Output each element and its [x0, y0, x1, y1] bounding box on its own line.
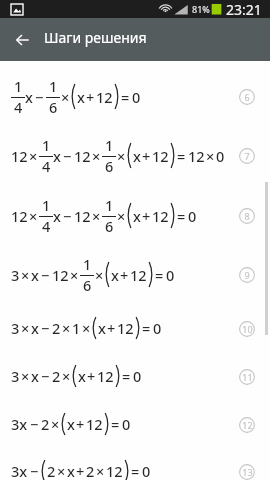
staticText: 1: [105, 195, 114, 215]
button[interactable]: 3x: [0, 408, 270, 442]
staticText: +: [76, 461, 85, 480]
staticText: ×: [29, 146, 38, 166]
staticText: x: [31, 265, 39, 285]
staticText: 6: [105, 156, 114, 176]
staticText: +: [142, 146, 151, 166]
staticText: x: [31, 318, 39, 338]
staticText: −: [41, 265, 50, 285]
staticText: x: [25, 87, 33, 107]
staticText: x: [53, 206, 61, 226]
staticText: +: [86, 87, 95, 107]
staticText: 6: [105, 216, 114, 236]
staticText: 0: [142, 461, 151, 480]
staticText: 12: [52, 265, 69, 285]
staticText: 3: [11, 366, 20, 386]
staticText: 3x: [11, 414, 28, 434]
staticText: 3: [11, 318, 20, 338]
staticText: 1: [83, 254, 92, 274]
staticText: 12: [106, 461, 123, 480]
staticText: 3x: [11, 461, 28, 480]
staticText: =: [142, 318, 151, 338]
staticText: ×: [62, 366, 71, 386]
staticText: =: [111, 414, 120, 434]
staticText: ×: [117, 206, 126, 226]
button[interactable]: 12: [0, 133, 270, 179]
staticText: 2: [41, 414, 50, 434]
staticText: −: [30, 414, 39, 434]
staticText: 1: [49, 76, 58, 96]
staticText: ×: [21, 318, 30, 338]
staticText: ×: [57, 461, 66, 480]
staticText: 11: [242, 371, 253, 383]
staticText: x: [133, 146, 141, 166]
staticText: 7: [244, 150, 250, 162]
staticText: ×: [21, 366, 30, 386]
staticText: 6: [49, 97, 58, 117]
staticText: 12: [86, 414, 103, 434]
staticText: x: [133, 206, 141, 226]
staticText: =: [131, 461, 140, 480]
staticText: 0: [153, 318, 162, 338]
staticText: +: [107, 318, 116, 338]
staticText: 12: [152, 206, 169, 226]
staticText: 6: [83, 275, 92, 295]
staticText: −: [35, 87, 44, 107]
staticText: −: [41, 318, 50, 338]
button[interactable]: 3: [0, 360, 270, 394]
staticText: 12: [97, 366, 114, 386]
staticText: 12: [96, 87, 113, 107]
staticText: −: [41, 366, 50, 386]
staticText: 12: [117, 318, 134, 338]
staticText: x: [67, 461, 75, 480]
staticText: =: [177, 146, 186, 166]
button[interactable]: 3: [0, 252, 270, 298]
staticText: 8: [244, 210, 250, 222]
staticText: =: [122, 366, 131, 386]
button[interactable]: 1: [0, 74, 270, 120]
staticText: 13: [242, 466, 253, 478]
staticText: 4: [14, 97, 23, 117]
staticText: +: [76, 414, 85, 434]
staticText: 1: [14, 76, 23, 96]
staticText: ×: [62, 318, 71, 338]
staticText: =: [121, 87, 130, 107]
staticText: x: [98, 318, 106, 338]
staticText: 1: [42, 195, 51, 215]
staticText: 3: [11, 265, 20, 285]
staticText: 2: [52, 366, 61, 386]
staticText: 10: [242, 323, 253, 335]
staticText: x: [53, 146, 61, 166]
staticText: 0: [166, 265, 175, 285]
staticText: =: [155, 265, 164, 285]
staticText: 1: [42, 135, 51, 155]
staticText: 12: [242, 419, 253, 431]
staticText: +: [142, 206, 151, 226]
staticText: 4: [42, 156, 51, 176]
staticText: 12: [74, 206, 91, 226]
staticText: ×: [117, 146, 126, 166]
staticText: x: [111, 265, 119, 285]
button[interactable]: 3: [0, 312, 270, 346]
staticText: 81%: [192, 3, 210, 15]
staticText: ×: [96, 461, 105, 480]
staticText: ×: [51, 414, 60, 434]
staticText: ×: [95, 265, 104, 285]
staticText: ×: [29, 206, 38, 226]
staticText: ×: [82, 318, 91, 338]
staticText: −: [63, 146, 72, 166]
staticText: ×: [206, 146, 215, 166]
staticText: 23:21: [226, 0, 262, 18]
staticText: −: [63, 206, 72, 226]
button[interactable]: Back: [4, 22, 40, 58]
button[interactable]: 12: [0, 193, 270, 239]
button[interactable]: 3x: [0, 455, 270, 480]
staticText: 12: [74, 146, 91, 166]
staticText: Шаги решения: [44, 28, 147, 47]
staticText: 1: [72, 318, 81, 338]
staticText: ×: [61, 87, 70, 107]
staticText: 0: [188, 206, 197, 226]
staticText: 1: [105, 135, 114, 155]
staticText: =: [177, 206, 186, 226]
staticText: 2: [86, 461, 95, 480]
staticText: 2: [47, 461, 56, 480]
